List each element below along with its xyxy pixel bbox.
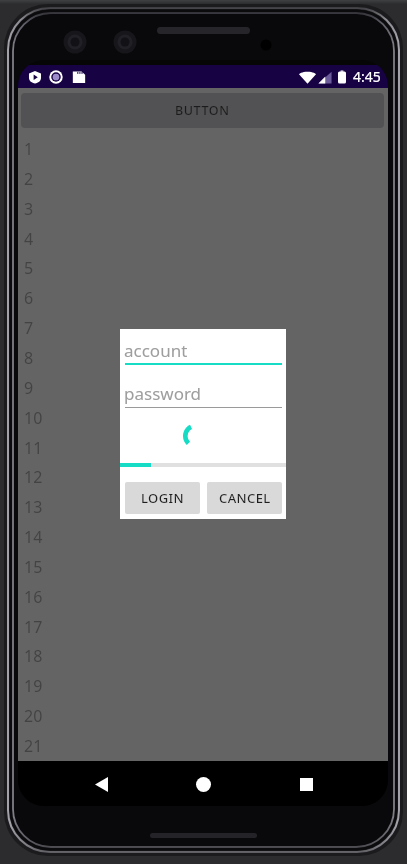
staticText: 4:45: [353, 67, 381, 86]
staticText: 5: [24, 257, 34, 279]
staticText: BUTTON: [175, 102, 230, 119]
staticText: 17: [24, 616, 43, 638]
button[interactable]: 13: [18, 492, 388, 522]
button[interactable]: Home: [183, 764, 223, 804]
staticText: 16: [24, 586, 43, 608]
staticText: 19: [24, 675, 43, 697]
button[interactable]: BUTTON: [21, 93, 384, 128]
button[interactable]: Recent apps: [286, 764, 326, 804]
staticText: 14: [24, 526, 43, 548]
staticText: CANCEL: [219, 489, 271, 507]
staticText: LOGIN: [141, 489, 185, 507]
staticText: 7: [24, 317, 34, 339]
staticText: 9: [24, 377, 34, 399]
staticText: 8: [24, 347, 34, 369]
button[interactable]: LOGIN: [125, 482, 200, 514]
button[interactable]: 10: [18, 403, 388, 433]
staticText: 20: [24, 705, 43, 727]
button[interactable]: 8: [18, 343, 388, 373]
staticText: 11: [24, 437, 43, 459]
staticText: 15: [24, 556, 43, 578]
staticText: 6: [24, 287, 34, 309]
button[interactable]: 12: [18, 462, 388, 492]
button[interactable]: 11: [18, 433, 388, 463]
staticText: account: [124, 339, 188, 362]
staticText: 4: [24, 228, 34, 250]
staticText: 3: [24, 198, 34, 220]
staticText: 13: [24, 496, 43, 518]
button[interactable]: 7: [18, 313, 388, 343]
staticText: 18: [24, 645, 43, 667]
button[interactable]: Back: [81, 764, 121, 804]
button[interactable]: 9: [18, 373, 388, 403]
staticText: password: [124, 382, 202, 405]
staticText: 1: [24, 138, 34, 160]
staticText: 21: [24, 735, 43, 757]
staticText: 12: [24, 466, 43, 488]
staticText: 10: [24, 407, 43, 429]
button[interactable]: CANCEL: [207, 482, 282, 514]
staticText: 2: [24, 168, 34, 190]
